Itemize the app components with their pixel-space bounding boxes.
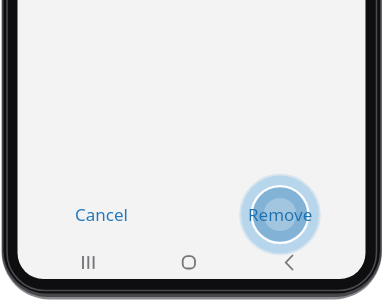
- staticText: Cancel: [75, 203, 128, 226]
- button[interactable]: [169, 243, 209, 281]
- button[interactable]: Cancel: [56, 193, 146, 235]
- button[interactable]: [269, 243, 309, 281]
- button[interactable]: [69, 243, 109, 281]
- staticText: Remove: [248, 203, 313, 226]
- button[interactable]: Remove: [235, 193, 325, 235]
